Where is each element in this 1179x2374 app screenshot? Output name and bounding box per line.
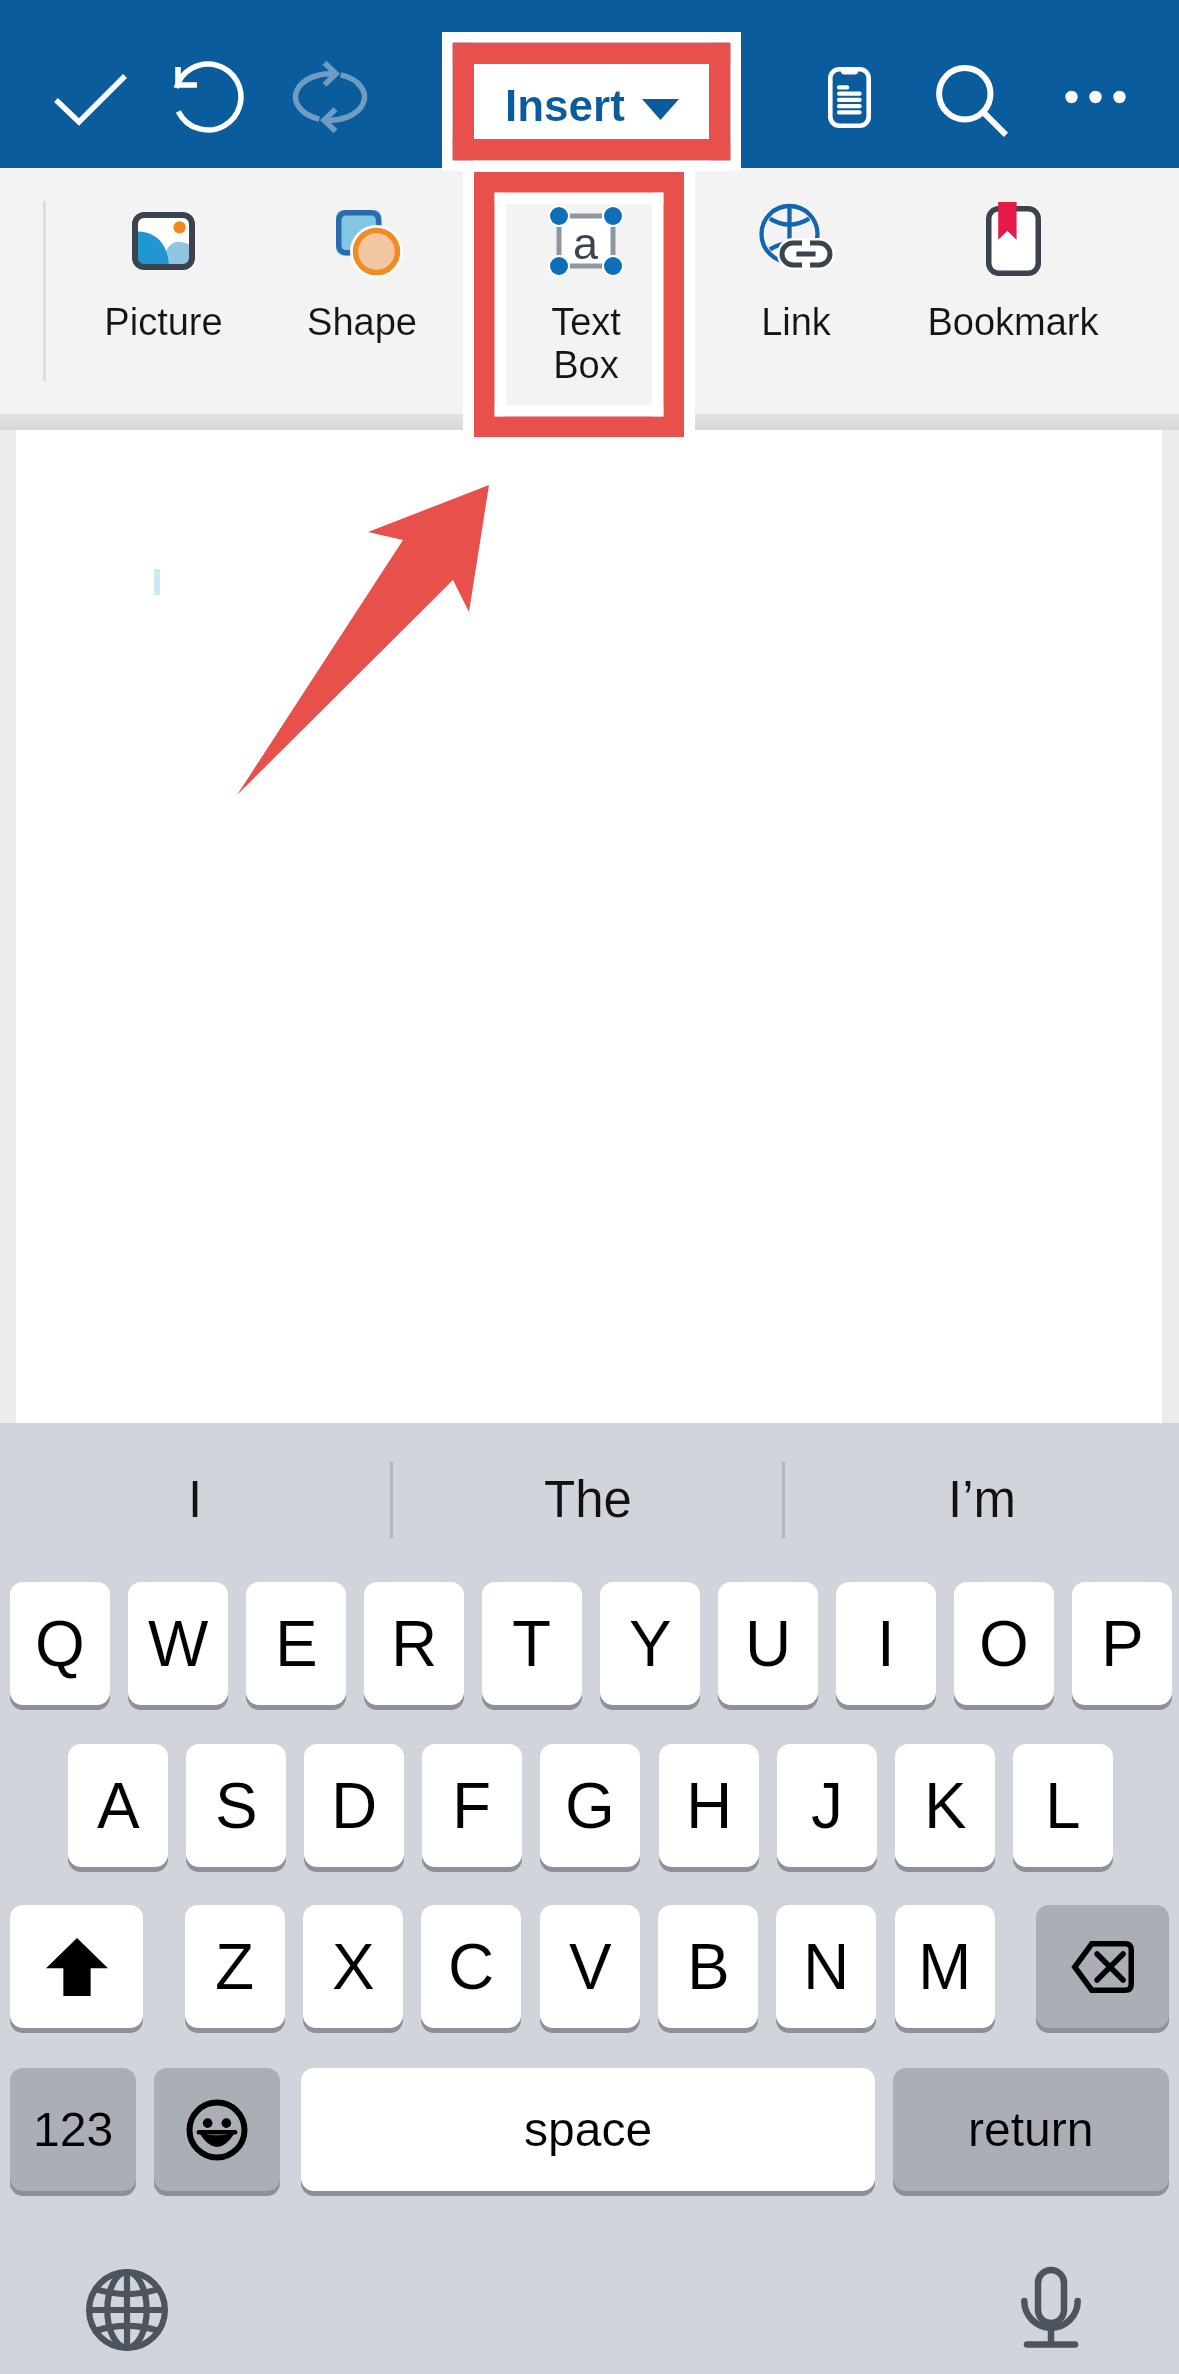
staticText: X — [332, 1931, 375, 2003]
staticText: V — [569, 1931, 612, 2003]
button[interactable]: The — [393, 1423, 782, 1576]
staticText: S — [215, 1770, 258, 1842]
staticText: A — [97, 1770, 140, 1842]
button[interactable]: F — [422, 1744, 522, 1867]
button[interactable]: Picture — [58, 168, 268, 414]
button[interactable]: N — [776, 1905, 876, 2028]
staticText: L — [1045, 1770, 1081, 1842]
staticText: D — [331, 1770, 378, 1842]
button[interactable]: V — [540, 1905, 640, 2028]
staticText: R — [391, 1608, 438, 1680]
button[interactable]: Y — [600, 1582, 700, 1705]
button[interactable]: Link — [691, 168, 901, 414]
button[interactable]: Bookmark — [908, 168, 1118, 414]
staticText: N — [803, 1931, 850, 2003]
button[interactable]: H — [659, 1744, 759, 1867]
staticText: E — [275, 1608, 318, 1680]
staticText: space — [524, 2103, 653, 2157]
button[interactable]: X — [303, 1905, 403, 2028]
staticText: C — [448, 1931, 495, 2003]
staticText: W — [148, 1608, 209, 1680]
staticText: B — [687, 1931, 730, 2003]
button[interactable]: Shift — [10, 1905, 143, 2028]
button[interactable]: I — [836, 1582, 936, 1705]
button[interactable]: Undo — [148, 37, 268, 157]
staticText: O — [979, 1608, 1029, 1680]
staticText: J — [811, 1770, 843, 1842]
button[interactable]: K — [895, 1744, 995, 1867]
staticText: Shape — [307, 301, 417, 343]
staticText: Picture — [104, 301, 223, 343]
button[interactable]: Search — [908, 37, 1028, 157]
staticText: Bookmark — [927, 301, 1099, 343]
button[interactable]: Backspace — [1036, 1905, 1169, 2028]
staticText: Y — [629, 1608, 672, 1680]
staticText: a — [573, 218, 599, 268]
staticText: Insert — [505, 81, 625, 130]
button[interactable]: E — [246, 1582, 346, 1705]
button[interactable]: L — [1013, 1744, 1113, 1867]
button[interactable]: D — [304, 1744, 404, 1867]
button[interactable]: Done — [23, 37, 143, 157]
button[interactable]: R — [364, 1582, 464, 1705]
button[interactable]: Change keyboard — [67, 2250, 187, 2370]
staticText: Link — [761, 301, 831, 343]
button[interactable]: B — [658, 1905, 758, 2028]
staticText: The — [544, 1471, 632, 1528]
button[interactable]: M — [895, 1905, 995, 2028]
button[interactable]: A — [68, 1744, 168, 1867]
staticText: Q — [35, 1608, 85, 1680]
staticText: P — [1101, 1608, 1144, 1680]
button[interactable]: Redo — [270, 37, 390, 157]
button[interactable]: Shape — [257, 168, 467, 414]
button[interactable]: Emoji — [154, 2068, 280, 2191]
button[interactable]: O — [954, 1582, 1054, 1705]
staticText: T — [512, 1608, 552, 1680]
button[interactable]: return — [893, 2068, 1169, 2191]
button[interactable]: a — [481, 168, 691, 414]
button[interactable]: U — [718, 1582, 818, 1705]
button[interactable]: More options — [1035, 37, 1155, 157]
button[interactable]: Insert — [474, 63, 709, 148]
staticText: return — [968, 2103, 1094, 2157]
staticText: Text Box — [551, 301, 621, 386]
staticText: I — [188, 1471, 203, 1528]
button[interactable]: T — [482, 1582, 582, 1705]
button[interactable]: I — [0, 1423, 391, 1576]
staticText: F — [452, 1770, 492, 1842]
button[interactable]: 123 — [10, 2068, 136, 2191]
staticText: K — [924, 1770, 967, 1842]
staticText: H — [686, 1770, 733, 1842]
staticText: 123 — [33, 2103, 114, 2157]
button[interactable]: J — [777, 1744, 877, 1867]
staticText: M — [918, 1931, 972, 2003]
button[interactable]: W — [128, 1582, 228, 1705]
button[interactable]: I’m — [785, 1423, 1179, 1576]
button[interactable]: C — [421, 1905, 521, 2028]
button[interactable]: Q — [10, 1582, 110, 1705]
button[interactable]: Mobile view — [789, 37, 909, 157]
button[interactable]: Z — [185, 1905, 285, 2028]
staticText: Z — [215, 1931, 255, 2003]
staticText: G — [565, 1770, 615, 1842]
button[interactable]: Dictate — [991, 2250, 1111, 2370]
button[interactable]: S — [186, 1744, 286, 1867]
staticText: I — [877, 1608, 895, 1680]
button[interactable]: space — [301, 2068, 875, 2191]
button[interactable]: P — [1072, 1582, 1172, 1705]
button[interactable]: G — [540, 1744, 640, 1867]
staticText: I’m — [948, 1471, 1016, 1528]
staticText: U — [745, 1608, 792, 1680]
